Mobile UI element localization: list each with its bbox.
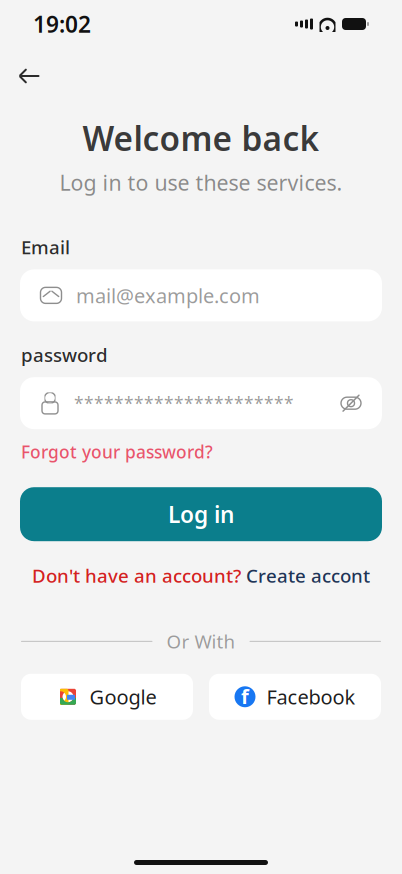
staticText: Facebook (266, 683, 355, 710)
staticText: Create accont (246, 563, 370, 588)
button[interactable]: Don't have an account? (0, 563, 402, 588)
staticText: Forgot your password? (21, 440, 213, 463)
staticText: Log in (168, 499, 234, 529)
staticText: Welcome back (82, 116, 319, 160)
button[interactable]: f (209, 674, 381, 720)
staticText: Google (89, 683, 156, 710)
staticText: f (241, 683, 249, 710)
button[interactable]: Show password (334, 386, 368, 420)
staticText: Email (21, 235, 70, 259)
staticText: mail@example.com (76, 282, 260, 309)
staticText: Or With (166, 629, 235, 654)
staticText: ********************** (74, 392, 294, 415)
staticText: password (21, 342, 108, 367)
button[interactable]: Forgot your password? (21, 440, 213, 463)
button[interactable]: Google (21, 674, 193, 720)
button[interactable]: Back (8, 58, 52, 94)
staticText: Don't have an account? (32, 563, 241, 588)
button[interactable]: Log in (20, 487, 382, 541)
staticText: Log in to use these services. (59, 168, 342, 197)
staticText: 19:02 (33, 9, 91, 39)
